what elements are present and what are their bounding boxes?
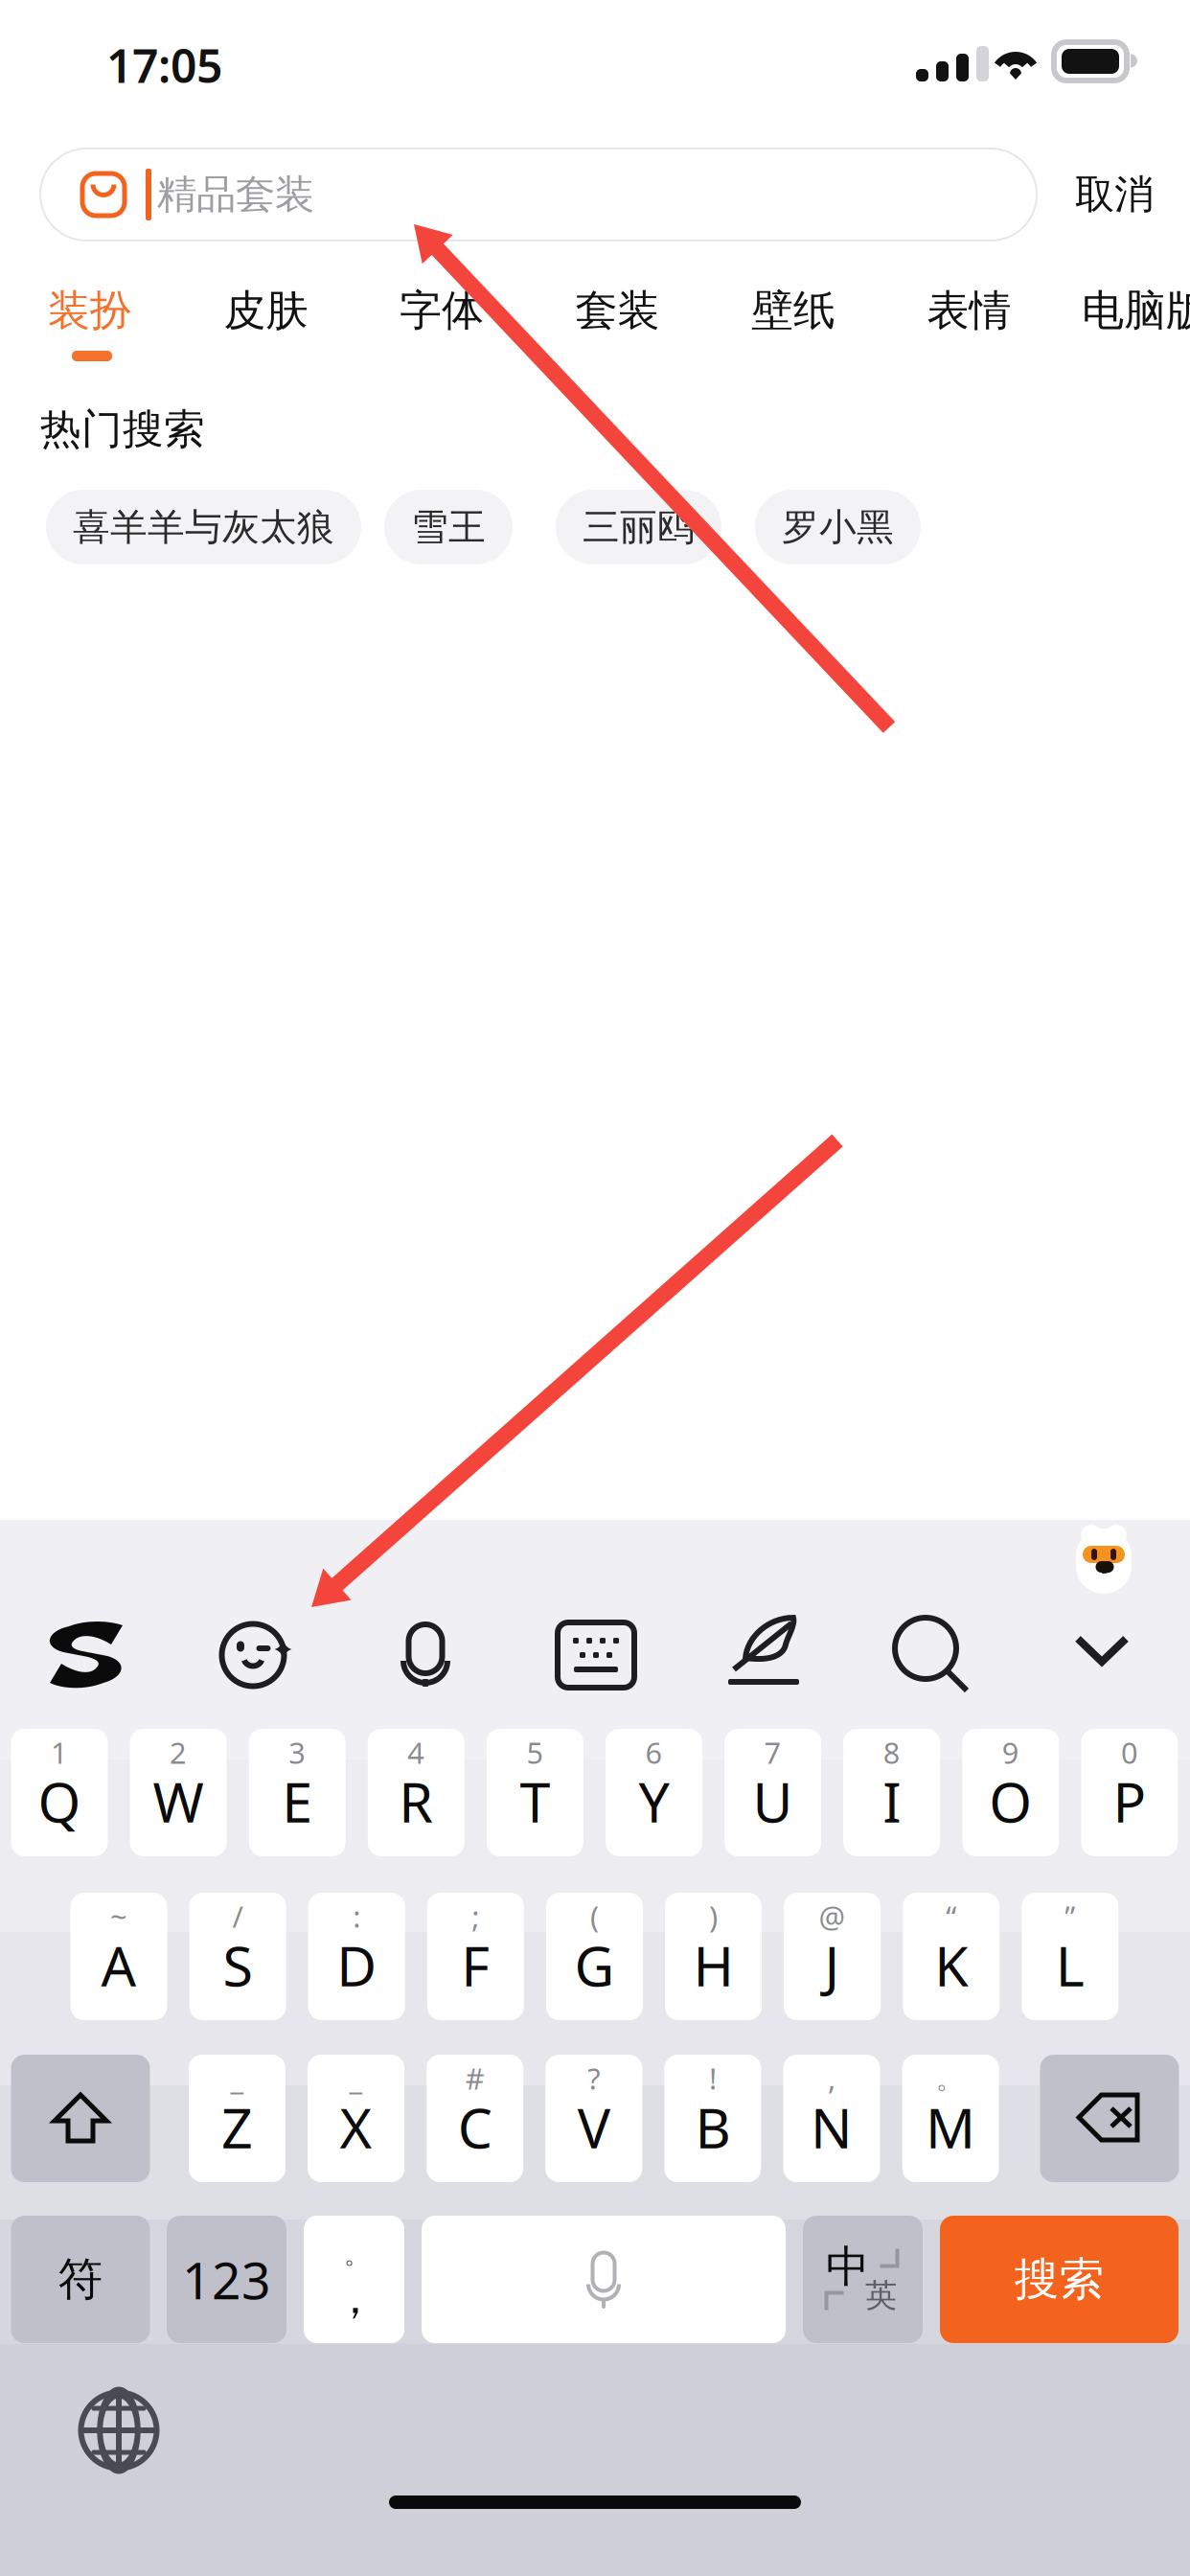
button[interactable]: 电脑版 [1064, 280, 1190, 341]
button[interactable]: 雪王 [384, 490, 513, 564]
staticText: _ [349, 2059, 363, 2098]
staticText: : [353, 1897, 360, 1936]
button[interactable]: 1 [11, 1729, 108, 1856]
button[interactable]: ; [427, 1893, 524, 2020]
button[interactable]: 3 [249, 1729, 346, 1856]
button[interactable]: “ [903, 1893, 1000, 2020]
staticText: X [340, 2091, 372, 2163]
staticText: 。 [936, 2060, 965, 2096]
button[interactable]: 。 [304, 2216, 404, 2343]
button[interactable]: 。 [902, 2055, 999, 2182]
button[interactable]: 7 [724, 1729, 821, 1856]
button[interactable]: ~ [70, 1893, 167, 2020]
button[interactable]: 三丽鸥 [556, 490, 721, 564]
button[interactable]: 4 [368, 1729, 465, 1856]
staticText: N [811, 2091, 853, 2163]
button[interactable]: 精品套装 [40, 149, 1037, 241]
button[interactable]: 2 [130, 1729, 227, 1856]
staticText: 搜索 [1014, 2252, 1104, 2307]
staticText: E [282, 1765, 313, 1838]
button[interactable]: ? [545, 2055, 642, 2182]
button[interactable]: ! [664, 2055, 761, 2182]
staticText: ) [709, 1897, 718, 1936]
button[interactable]: 表情 [888, 280, 1051, 341]
button[interactable]: 9 [962, 1729, 1059, 1856]
staticText: @ [819, 1897, 846, 1936]
button[interactable]: / [189, 1893, 286, 2020]
button[interactable]: 取消 [1054, 149, 1175, 241]
button[interactable]: 中 [803, 2216, 923, 2343]
staticText: H [693, 1929, 733, 2001]
button[interactable]: 搜索 [940, 2216, 1179, 2343]
button[interactable]: @ [784, 1893, 881, 2020]
button[interactable]: 6 [606, 1729, 702, 1856]
staticText: A [101, 1929, 137, 2001]
staticText: 6 [645, 1733, 663, 1772]
button[interactable]: 0 [1081, 1729, 1178, 1856]
staticText: 123 [182, 2245, 271, 2313]
staticText: 电脑版 [1082, 285, 1190, 336]
button[interactable]: Handwriting [718, 1611, 806, 1699]
button[interactable] [422, 2216, 786, 2343]
staticText: ~ [110, 1897, 127, 1936]
staticText: V [578, 2091, 610, 2163]
staticText: 喜羊羊与灰太狼 [73, 504, 334, 550]
button[interactable]: , [783, 2055, 880, 2182]
button[interactable]: 5 [487, 1729, 583, 1856]
button[interactable]: 壁纸 [712, 280, 875, 341]
button[interactable]: 8 [843, 1729, 940, 1856]
staticText: M [926, 2091, 975, 2163]
staticText: 5 [526, 1733, 544, 1772]
staticText: F [461, 1929, 490, 2001]
button[interactable]: Keyboard layout [554, 1619, 638, 1691]
staticText: L [1056, 1929, 1084, 2001]
button[interactable]: Voice input [393, 1620, 458, 1690]
staticText: W [153, 1765, 204, 1838]
staticText: 7 [764, 1733, 781, 1772]
staticText: 壁纸 [751, 285, 835, 336]
button[interactable]: 123 [167, 2216, 286, 2343]
button[interactable]: Switch input language [80, 2391, 158, 2470]
button[interactable]: 喜羊羊与灰太狼 [46, 490, 361, 564]
button[interactable]: ” [1022, 1893, 1118, 2020]
staticText: ， [333, 2272, 377, 2325]
staticText: Q [38, 1765, 81, 1838]
staticText: P [1113, 1765, 1146, 1838]
staticText: 8 [883, 1733, 900, 1772]
button[interactable]: 装扮 [9, 280, 172, 341]
staticText: , [828, 2059, 835, 2098]
button[interactable]: 符 [11, 2216, 150, 2343]
button[interactable]: ) [665, 1893, 762, 2020]
button[interactable]: Sogou input [40, 1609, 132, 1701]
button[interactable]: 皮肤 [184, 280, 347, 341]
button[interactable]: ( [546, 1893, 643, 2020]
staticText: 符 [58, 2252, 103, 2307]
staticText: 套装 [575, 285, 660, 336]
staticText: 9 [1002, 1733, 1019, 1772]
button[interactable]: Search [891, 1613, 972, 1697]
staticText: B [695, 2091, 730, 2163]
button[interactable]: Hide keyboard [1063, 1610, 1143, 1694]
button[interactable]: 套装 [536, 280, 699, 341]
staticText: 2 [170, 1733, 187, 1772]
staticText: O [989, 1765, 1032, 1838]
button[interactable]: # [427, 2055, 523, 2182]
button[interactable]: 罗小黑 [755, 490, 921, 564]
button[interactable]: 字体 [360, 280, 523, 341]
button[interactable]: Emoji [207, 1611, 299, 1699]
staticText: ? [588, 2059, 600, 2098]
staticText: 表情 [927, 285, 1011, 336]
staticText: D [336, 1929, 377, 2001]
staticText: 雪王 [411, 504, 486, 550]
button[interactable] [1040, 2055, 1179, 2182]
button[interactable]: : [308, 1893, 405, 2020]
staticText: 字体 [400, 285, 484, 336]
staticText: 英 [865, 2276, 897, 2315]
staticText: R [399, 1765, 433, 1838]
button[interactable]: _ [308, 2055, 404, 2182]
staticText: 0 [1121, 1733, 1138, 1772]
staticText: # [465, 2059, 485, 2098]
button[interactable] [11, 2055, 150, 2182]
button[interactable]: _ [189, 2055, 286, 2182]
staticText: 中 [826, 2240, 869, 2294]
